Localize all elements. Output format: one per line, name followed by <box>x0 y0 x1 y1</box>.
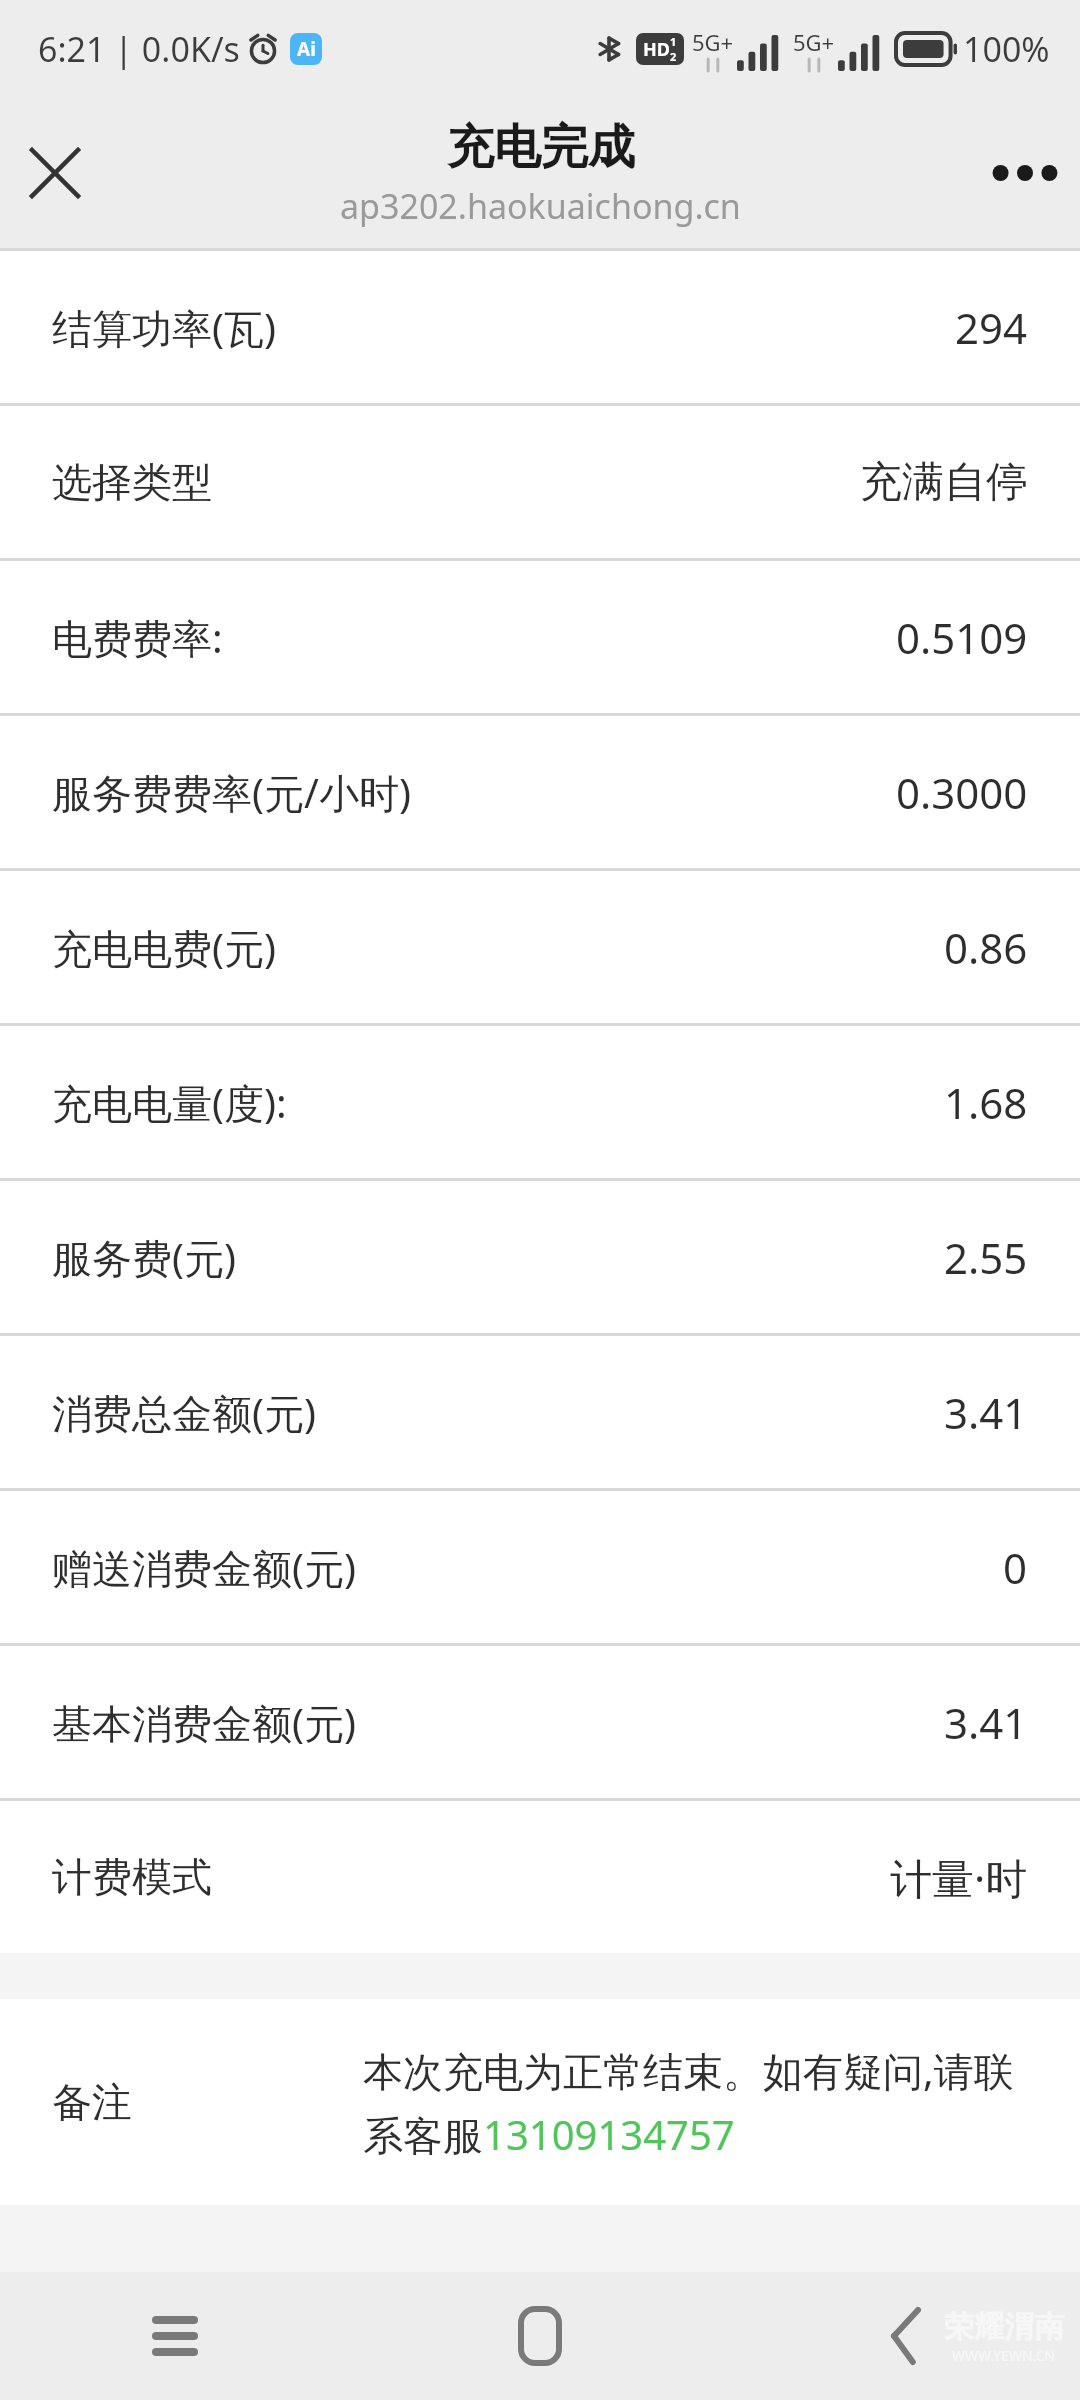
staticText: 充电电费(元) <box>52 920 276 975</box>
button[interactable]: Recent apps <box>120 2281 230 2391</box>
staticText: 294 <box>955 299 1028 356</box>
staticText: 备注 <box>52 2077 132 2127</box>
staticText: ap3202.haokuaichong.cn <box>340 183 741 229</box>
staticText: 服务费费率(元/小时) <box>52 765 411 820</box>
staticText: 1 <box>670 34 677 49</box>
button[interactable]: Back <box>850 2281 960 2391</box>
staticText: 3.41 <box>944 1694 1028 1751</box>
staticText: WWW.YEWN.CN <box>952 2346 1056 2365</box>
staticText: 消费总金额(元) <box>52 1385 316 1440</box>
staticText: 2.55 <box>944 1229 1028 1286</box>
staticText: 1.68 <box>944 1074 1028 1131</box>
button[interactable]: 服务费费率(元/小时) <box>0 716 1080 868</box>
staticText: 0 <box>1003 1539 1028 1596</box>
button[interactable]: 基本消费金额(元) <box>0 1646 1080 1798</box>
staticText: 基本消费金额(元) <box>52 1695 356 1750</box>
button[interactable]: Home <box>485 2281 595 2391</box>
staticText: 6:21 | 0.0K/s <box>38 26 240 72</box>
staticText: 充满自停 <box>860 456 1028 509</box>
button[interactable]: 消费总金额(元) <box>0 1336 1080 1488</box>
staticText: 荣耀渭南 <box>944 2308 1064 2346</box>
staticText: 充电电量(度): <box>52 1075 287 1130</box>
staticText: 0.86 <box>944 919 1028 976</box>
staticText: Ai <box>297 36 316 62</box>
staticText: 选择类型 <box>52 457 212 507</box>
button[interactable]: 选择类型 <box>0 406 1080 558</box>
staticText: 5G+ <box>793 27 835 57</box>
button[interactable]: More options <box>970 118 1080 228</box>
staticText: 2 <box>670 49 677 64</box>
button[interactable]: 服务费(元) <box>0 1181 1080 1333</box>
staticText: 本次充电为正常结束。如有疑问,请联系客服13109134757 <box>363 2043 1028 2162</box>
staticText: 3.41 <box>944 1384 1028 1441</box>
staticText: 赠送消费金额(元) <box>52 1540 356 1595</box>
button[interactable]: 赠送消费金额(元) <box>0 1491 1080 1643</box>
button[interactable]: 备注 <box>0 1999 1080 2205</box>
button[interactable]: Close <box>0 118 110 228</box>
staticText: 计费模式 <box>52 1852 212 1902</box>
staticText: 计量·时 <box>890 1849 1028 1906</box>
staticText: 服务费(元) <box>52 1230 236 1285</box>
button[interactable]: 电费费率: <box>0 561 1080 713</box>
staticText: 结算功率(瓦) <box>52 300 276 355</box>
button[interactable]: 充电电量(度): <box>0 1026 1080 1178</box>
button[interactable]: 计费模式 <box>0 1801 1080 1953</box>
staticText: 5G+ <box>692 27 734 57</box>
staticText: 充电完成 <box>447 118 635 177</box>
staticText: 0.3000 <box>896 764 1028 821</box>
button[interactable]: 充电电费(元) <box>0 871 1080 1023</box>
staticText: HD <box>643 37 670 62</box>
staticText: 100% <box>963 26 1050 72</box>
button[interactable]: 结算功率(瓦) <box>0 251 1080 403</box>
staticText: 0.5109 <box>896 609 1028 666</box>
staticText: 电费费率: <box>52 610 223 665</box>
